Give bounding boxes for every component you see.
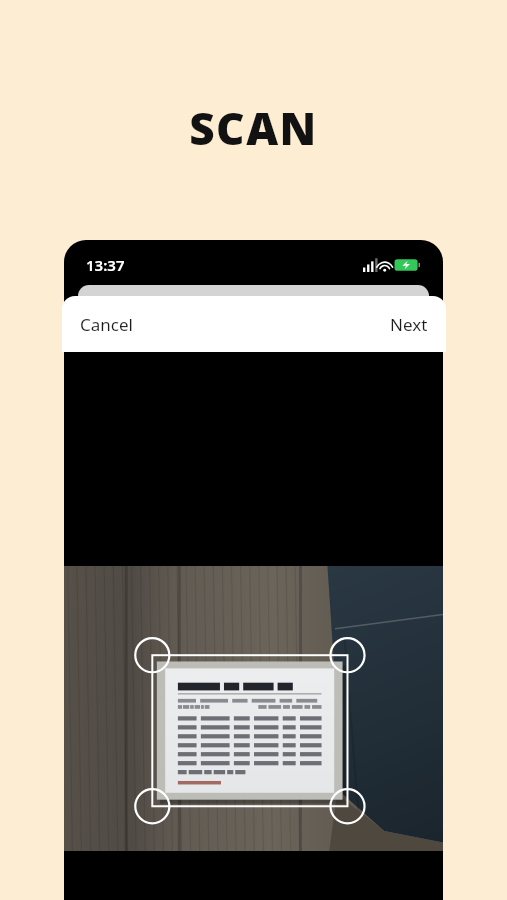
button[interactable]: Next xyxy=(380,305,438,344)
staticText: Next xyxy=(390,313,428,336)
staticText: 13:37 xyxy=(86,255,125,275)
button[interactable]: Cancel xyxy=(70,305,143,344)
staticText: Cancel xyxy=(80,313,133,336)
staticText: SCAN xyxy=(0,98,507,158)
